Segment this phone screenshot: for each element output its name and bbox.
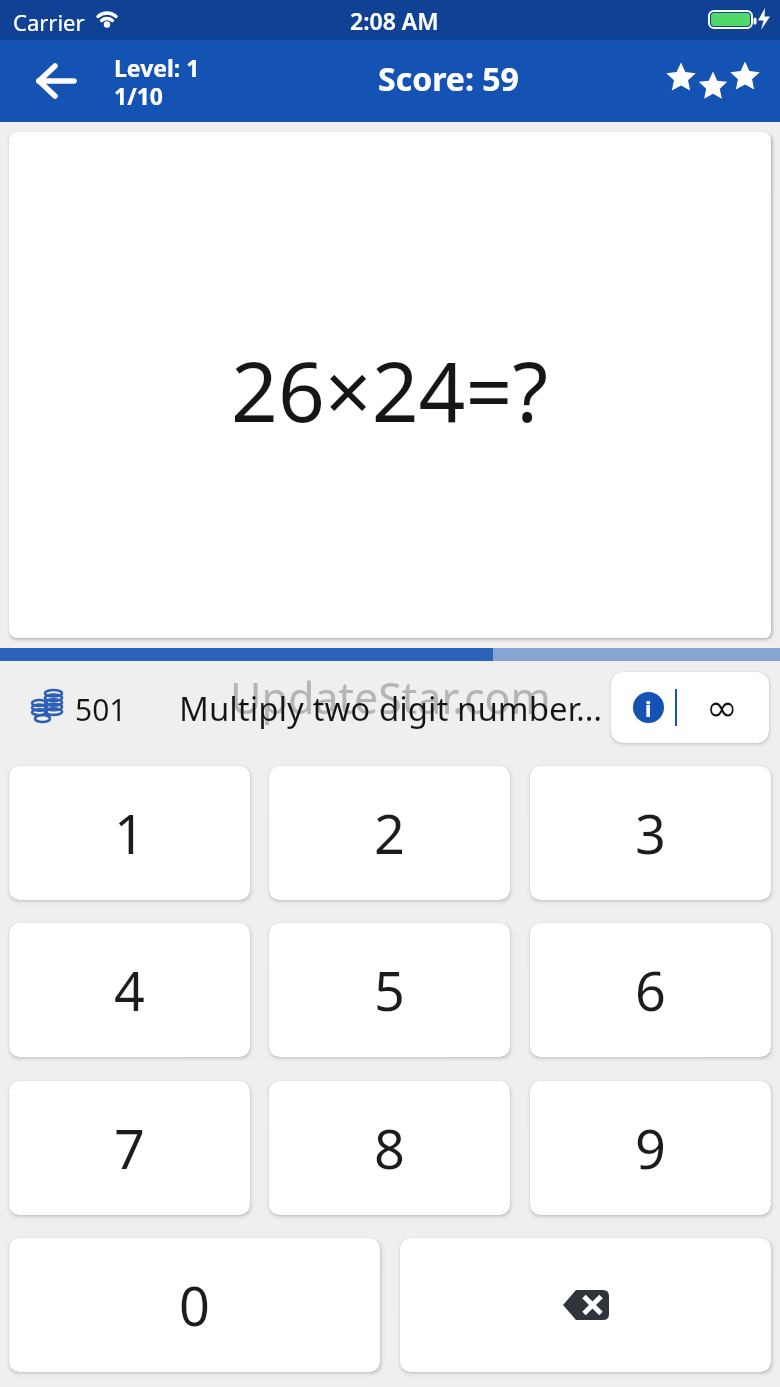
staticText: 501 (75, 689, 127, 730)
staticText: 2 (374, 796, 405, 870)
staticText: 4 (114, 953, 145, 1027)
staticText: 1/10 (114, 80, 164, 111)
staticText: 0 (179, 1268, 210, 1342)
staticText: 5 (374, 953, 405, 1027)
staticText: 26×24=? (231, 334, 549, 446)
button[interactable]: 4 (9, 923, 250, 1057)
staticText: Score: 59 (378, 57, 519, 101)
button[interactable]: 3 (530, 766, 771, 900)
staticText: 1 (114, 796, 145, 870)
button[interactable]: 5 (269, 923, 510, 1057)
staticText: ∞ (706, 686, 738, 730)
button[interactable]: 1 (9, 766, 250, 900)
staticText: UpdateStar.com (230, 668, 551, 727)
staticText: 8 (374, 1111, 405, 1185)
button[interactable] (400, 1238, 771, 1372)
button[interactable]: 0 (9, 1238, 380, 1372)
staticText: 3 (635, 796, 666, 870)
staticText: Carrier (13, 7, 85, 37)
button[interactable]: 9 (530, 1081, 771, 1215)
staticText: 6 (635, 953, 666, 1027)
button[interactable]: 7 (9, 1081, 250, 1215)
staticText: Multiply two digit number… (179, 686, 602, 731)
staticText: 7 (114, 1111, 145, 1185)
staticText: i (645, 693, 652, 723)
button[interactable] (24, 52, 88, 110)
staticText: 9 (635, 1111, 666, 1185)
button[interactable]: 6 (530, 923, 771, 1057)
staticText: 2:08 AM (350, 5, 439, 36)
button[interactable]: 8 (269, 1081, 510, 1215)
staticText: Level: 1 (114, 52, 200, 83)
button[interactable]: 2 (269, 766, 510, 900)
button[interactable]: i (611, 672, 769, 743)
